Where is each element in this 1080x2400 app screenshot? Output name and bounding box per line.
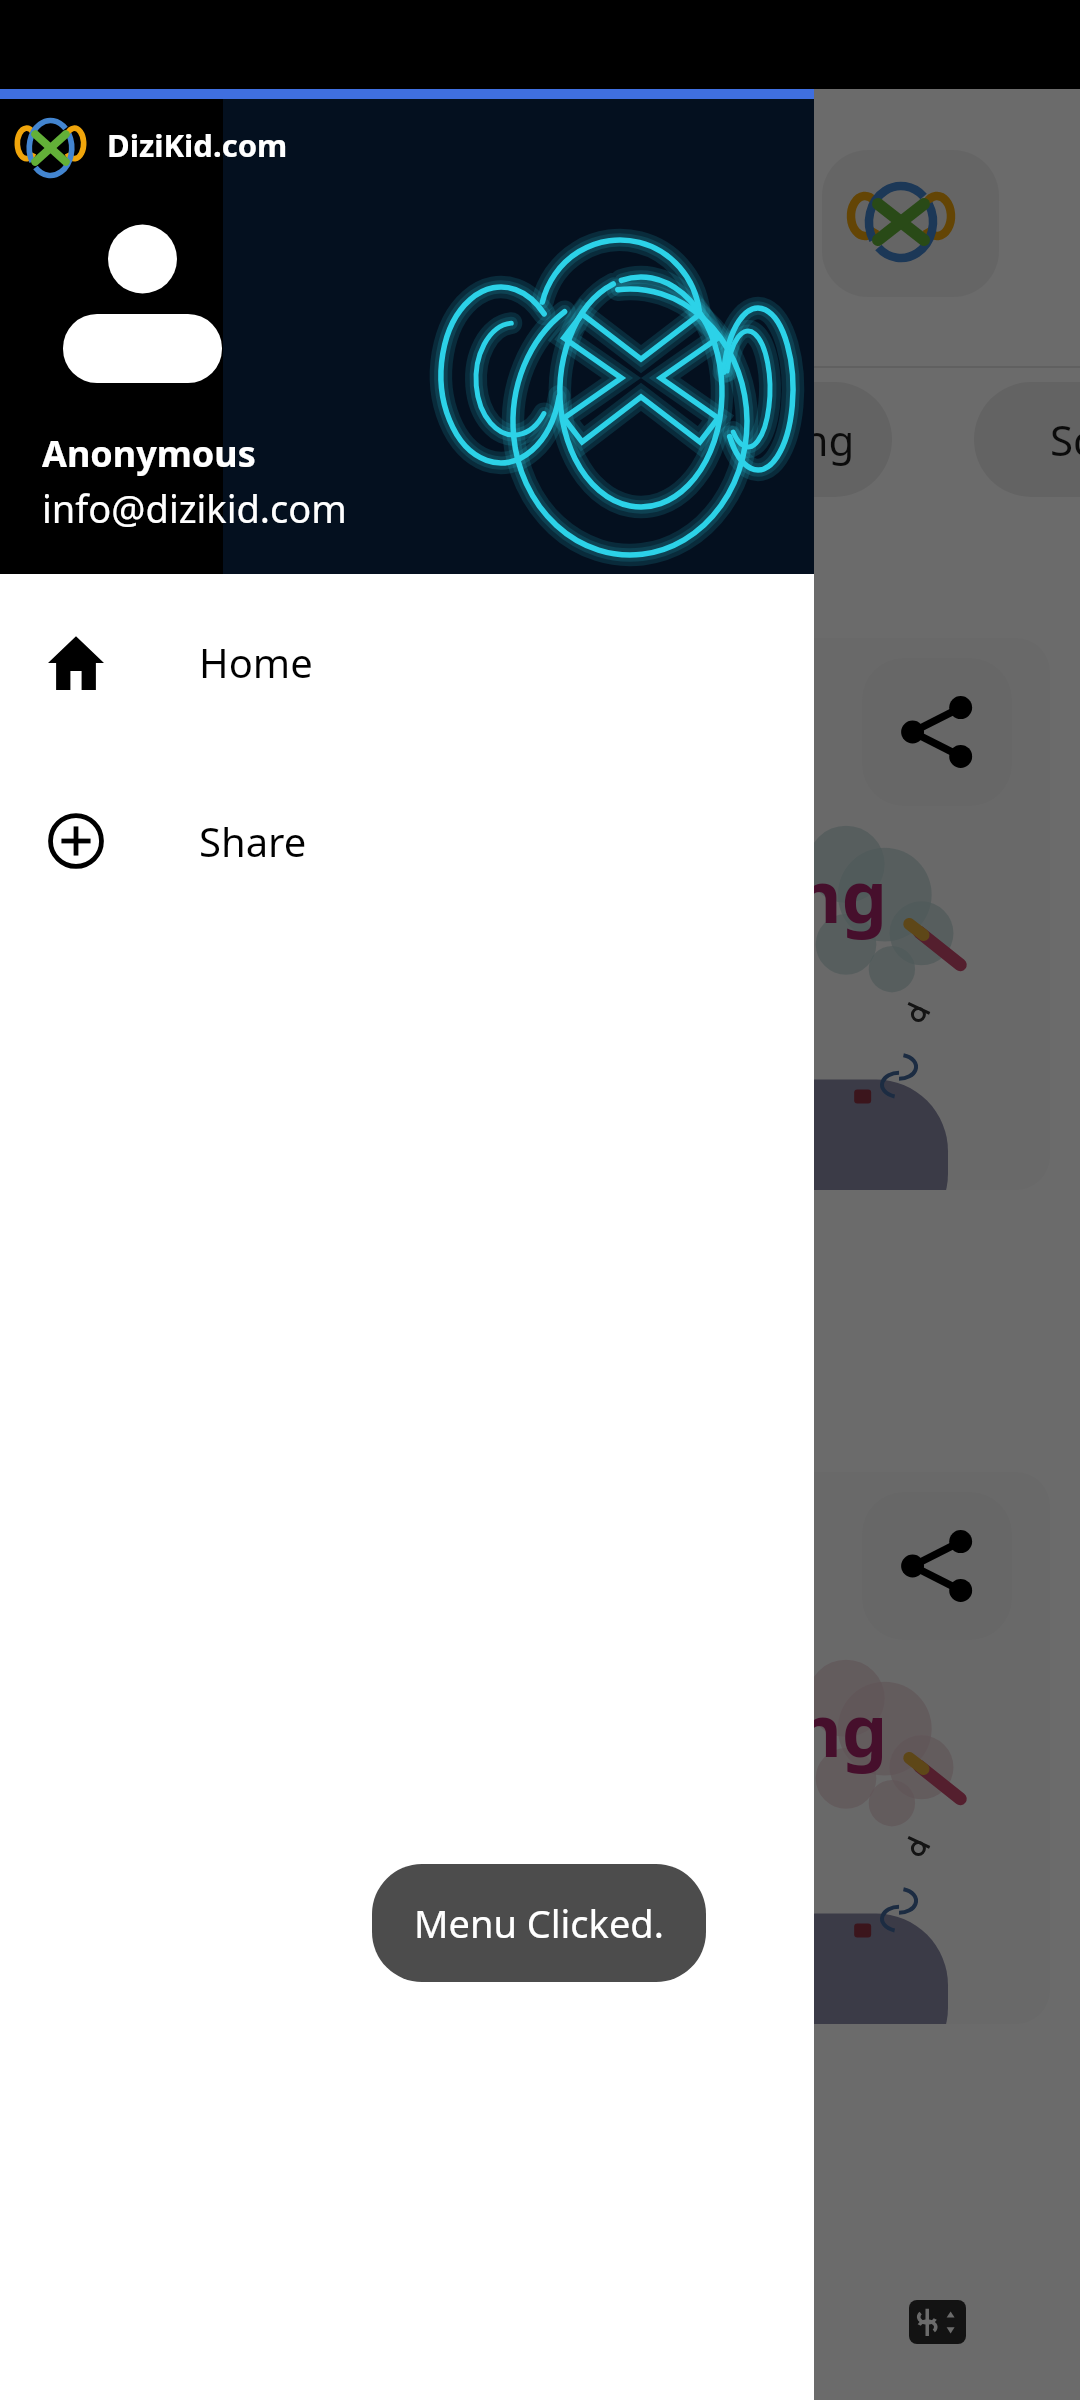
staticText: Menu Clicked. — [414, 1897, 664, 1949]
staticText: DiziKid.com — [107, 124, 288, 166]
staticText: Share — [199, 814, 307, 868]
staticText: Drawing — [688, 411, 855, 468]
button[interactable]: Share — [862, 1492, 1012, 1640]
button[interactable]: Share — [0, 786, 814, 896]
button[interactable]: Home — [0, 607, 814, 717]
staticText: Drawing — [585, 846, 888, 944]
button[interactable]: Share — [862, 658, 1012, 806]
staticText: Anonymous — [42, 429, 256, 478]
button[interactable]: Painting — [200, 382, 530, 497]
button[interactable]: Currency — [909, 2300, 966, 2344]
staticText: Painting — [586, 1680, 888, 1778]
staticText: Science — [1050, 411, 1080, 468]
button[interactable]: App logo — [822, 150, 999, 297]
button[interactable]: Science — [974, 382, 1080, 497]
staticText: Painting — [283, 411, 447, 468]
staticText: Home — [199, 635, 313, 689]
staticText: info@dizikid.com — [42, 482, 347, 534]
button[interactable]: Drawing — [584, 382, 892, 497]
